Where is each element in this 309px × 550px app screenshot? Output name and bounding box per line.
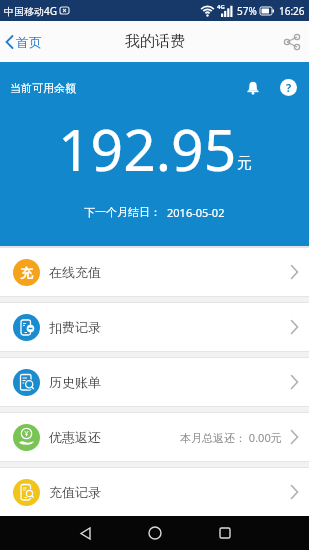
button[interactable] [190, 516, 260, 550]
button[interactable] [120, 516, 190, 550]
button[interactable]: 充值记录 [0, 468, 309, 516]
staticText: 充 [20, 265, 33, 281]
staticText: 57% [237, 4, 257, 18]
button[interactable]: ? [280, 79, 297, 96]
staticText: 优惠返还 [49, 429, 101, 445]
staticText: 下一个月结日： [84, 205, 161, 219]
staticText: 我的话费 [125, 32, 185, 51]
staticText: 在线充值 [49, 264, 101, 280]
staticText: 扣费记录 [49, 319, 101, 335]
staticText: 当前可用余额 [10, 81, 76, 95]
button[interactable]: 扣费记录 [0, 303, 309, 351]
staticText: 充值记录 [49, 484, 101, 500]
staticText: 首页 [16, 34, 42, 50]
staticText: ? [286, 80, 292, 95]
staticText: 2016-05-02 [167, 205, 225, 220]
staticText: 元 [237, 154, 252, 173]
staticText: 16:26 [279, 4, 305, 18]
button[interactable]: 优惠返还 [0, 413, 309, 461]
button[interactable] [246, 81, 260, 95]
staticText: 中国移动4G [4, 4, 57, 18]
staticText: 4G [217, 3, 225, 11]
button[interactable] [50, 516, 120, 550]
button[interactable] [284, 34, 300, 50]
staticText: 192.95 [58, 110, 237, 188]
button[interactable]: 首页 [5, 34, 42, 50]
button[interactable]: 充 [0, 248, 309, 296]
staticText: 本月总返还： 0.00元 [180, 430, 282, 445]
staticText: 历史账单 [49, 374, 101, 390]
button[interactable]: 历史账单 [0, 358, 309, 406]
